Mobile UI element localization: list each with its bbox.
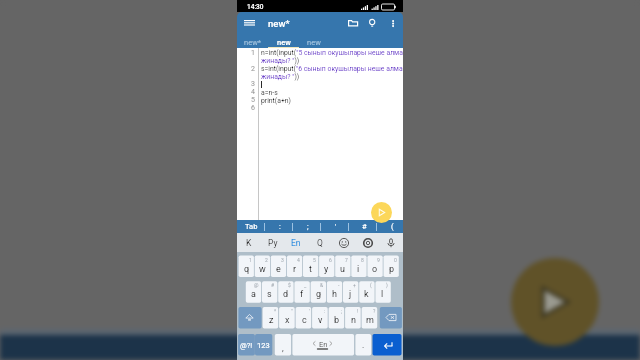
staticText: *: [274, 308, 277, 314]
staticText: 1: [249, 257, 252, 263]
staticText: c: [302, 315, 307, 326]
button[interactable]: 0: [384, 256, 399, 278]
staticText: ': [309, 308, 310, 314]
staticText: m: [366, 315, 374, 326]
staticText: new: [307, 38, 321, 47]
button[interactable]: Space: [292, 334, 354, 356]
staticText: 1: [237, 49, 255, 57]
button[interactable]: #: [352, 220, 376, 233]
staticText: k: [364, 289, 369, 300]
staticText: _: [304, 282, 307, 288]
staticText: y: [324, 264, 329, 275]
button[interactable]: *: [263, 307, 279, 329]
button[interactable]: 9: [367, 256, 382, 278]
staticText: !: [357, 308, 359, 314]
button[interactable]: Navigation menu: [238, 12, 260, 34]
button[interactable]: $: [278, 281, 293, 303]
staticText: @: [254, 282, 259, 288]
button[interactable]: ': [324, 220, 348, 233]
staticText: new*: [268, 18, 290, 29]
button[interactable]: En: [284, 233, 308, 252]
button[interactable]: ): [375, 281, 390, 303]
staticText: ,: [282, 343, 284, 353]
staticText: 4: [297, 257, 300, 263]
button[interactable]: Hints: [361, 12, 383, 34]
button[interactable]: ,: [275, 334, 291, 356]
button[interactable]: Voice input: [379, 233, 403, 252]
button[interactable]: .: [355, 334, 371, 356]
button[interactable]: 6: [319, 256, 334, 278]
button[interactable]: More options: [383, 13, 403, 33]
button[interactable]: (: [380, 220, 404, 233]
button[interactable]: new: [268, 34, 299, 48]
button[interactable]: new*: [237, 34, 268, 48]
staticText: 2: [237, 65, 255, 73]
button[interactable]: Keyboard settings: [356, 233, 380, 252]
button[interactable]: :: [268, 220, 292, 233]
button[interactable]: -: [327, 281, 342, 303]
staticText: 4: [237, 88, 255, 96]
button[interactable]: ;: [329, 307, 345, 329]
staticText: Ру: [268, 238, 278, 248]
button[interactable]: Emoji: [332, 233, 356, 252]
button[interactable]: ?: [362, 307, 378, 329]
staticText: ;: [341, 308, 343, 314]
button[interactable]: Enter: [373, 334, 402, 356]
staticText: d: [283, 289, 289, 300]
button[interactable]: !: [345, 307, 361, 329]
button[interactable]: @?!: [238, 334, 255, 356]
button[interactable]: 1: [239, 256, 254, 278]
staticText: q: [244, 264, 250, 275]
button[interactable]: Run: [371, 202, 392, 223]
button[interactable]: Shift: [238, 307, 261, 329]
button[interactable]: Q: [308, 233, 332, 252]
staticText: new*: [244, 38, 261, 47]
staticText: 6: [237, 104, 255, 112]
staticText: En: [319, 340, 328, 349]
staticText: ": [291, 308, 293, 314]
button[interactable]: Backspace: [380, 307, 402, 329]
button[interactable]: &: [311, 281, 326, 303]
button[interactable]: ;: [296, 220, 320, 233]
staticText: s: [267, 289, 272, 300]
staticText: x: [285, 315, 290, 326]
button[interactable]: 2: [255, 256, 270, 278]
staticText: w: [259, 264, 266, 275]
button[interactable]: 7: [335, 256, 350, 278]
button[interactable]: _: [294, 281, 309, 303]
button[interactable]: 5: [303, 256, 318, 278]
button[interactable]: 4: [287, 256, 302, 278]
staticText: s=int(input("6 сынып окушылары неше алма…: [261, 65, 404, 81]
staticText: 0: [394, 257, 397, 263]
button[interactable]: (: [359, 281, 374, 303]
staticText: 6: [329, 257, 332, 263]
button[interactable]: 8: [351, 256, 366, 278]
button[interactable]: :: [312, 307, 328, 329]
button[interactable]: 123: [255, 334, 272, 356]
button[interactable]: ': [296, 307, 312, 329]
button[interactable]: 3: [271, 256, 286, 278]
button[interactable]: ": [279, 307, 295, 329]
staticText: v: [318, 315, 323, 326]
staticText: e: [276, 264, 281, 275]
staticText: ': [335, 222, 337, 231]
staticText: r: [293, 264, 297, 275]
staticText: (: [370, 282, 372, 288]
staticText: a=n-s: [261, 89, 278, 97]
staticText: t: [309, 264, 312, 275]
staticText: f: [300, 289, 304, 300]
button[interactable]: @: [246, 281, 261, 303]
button[interactable]: new: [298, 34, 329, 48]
button[interactable]: Open file: [342, 12, 364, 34]
staticText: #: [362, 222, 367, 231]
button[interactable]: +: [343, 281, 358, 303]
button[interactable]: Ру: [261, 233, 285, 252]
button[interactable]: K: [237, 233, 261, 252]
button[interactable]: #: [262, 281, 277, 303]
staticText: .: [362, 340, 365, 350]
staticText: n: [351, 315, 356, 326]
staticText: o: [372, 264, 378, 275]
button[interactable]: Tab: [241, 220, 262, 233]
staticText: 5: [313, 257, 316, 263]
staticText: ?: [373, 308, 376, 314]
